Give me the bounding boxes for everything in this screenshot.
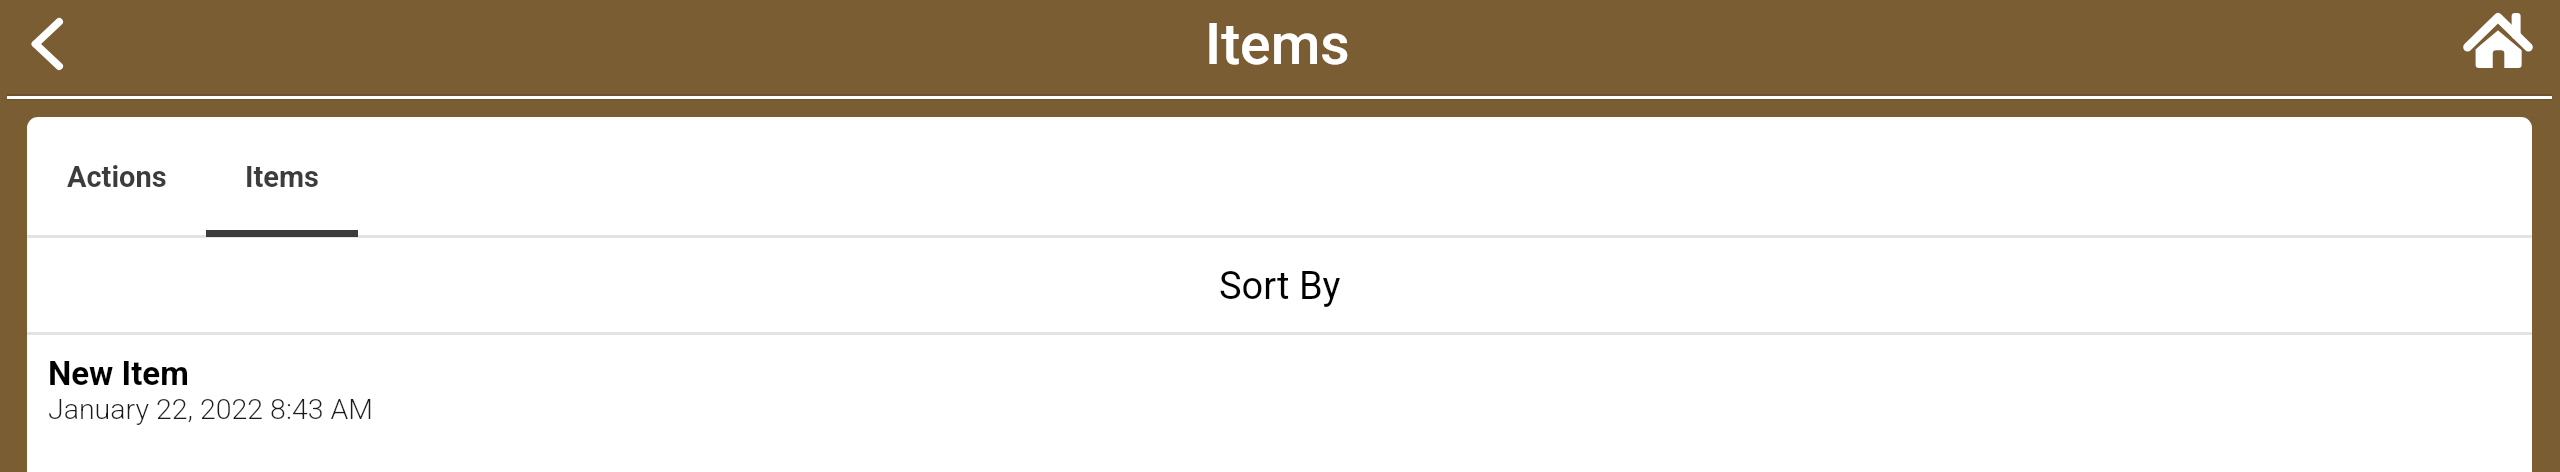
staticText: January 22, 2022 8:43 AM [48,393,373,426]
staticText: Items [245,160,319,194]
staticText: Sort By [1219,264,1341,309]
button[interactable]: Back [9,6,85,82]
staticText: Actions [67,160,167,194]
staticText: Items [1205,11,1350,78]
button[interactable]: Items [206,117,358,238]
button[interactable]: New Item [27,335,2532,426]
button[interactable]: Home [2460,2,2536,78]
button[interactable]: Sort By [27,238,2532,332]
button[interactable]: Actions [27,117,206,238]
staticText: New Item [48,354,189,393]
